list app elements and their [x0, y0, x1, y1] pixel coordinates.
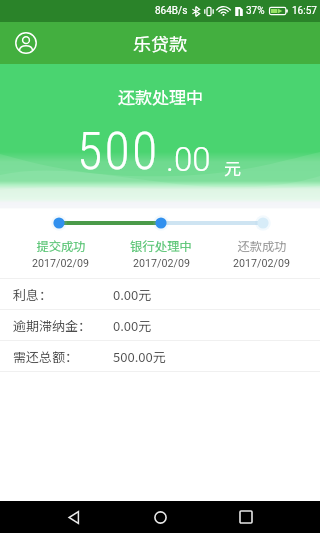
- staticText: 元: [224, 155, 241, 180]
- staticText: 还款处理中: [118, 84, 203, 109]
- button[interactable]: 利息：: [0, 279, 320, 309]
- staticText: 逾期滞纳金：: [13, 316, 92, 335]
- button[interactable]: Back: [46, 501, 102, 533]
- button[interactable]: 银行处理中: [121, 237, 201, 268]
- staticText: 乐贷款: [133, 30, 187, 56]
- staticText: 500: [77, 121, 160, 182]
- staticText: 还款成功: [237, 237, 287, 255]
- staticText: 需还总额：: [13, 347, 79, 366]
- staticText: 利息：: [13, 285, 53, 304]
- button[interactable]: Recent apps: [218, 501, 274, 533]
- staticText: 0.00元: [113, 316, 152, 335]
- staticText: 银行处理中: [130, 237, 192, 255]
- staticText: 2017/02/09: [133, 257, 190, 270]
- staticText: 37%: [246, 5, 265, 17]
- staticText: 0.00元: [113, 285, 152, 304]
- button[interactable]: Home: [132, 501, 188, 533]
- button[interactable]: 逾期滞纳金：: [0, 310, 320, 340]
- button[interactable]: 需还总额：: [0, 341, 320, 371]
- staticText: 2017/02/09: [233, 257, 290, 270]
- button[interactable]: Account: [11, 28, 41, 58]
- staticText: .00: [166, 140, 211, 179]
- button[interactable]: 还款成功: [221, 237, 301, 268]
- staticText: 16:57: [292, 5, 317, 17]
- staticText: 2017/02/09: [32, 257, 89, 270]
- staticText: 500.00元: [113, 347, 166, 366]
- staticText: 提交成功: [36, 237, 86, 255]
- button[interactable]: 提交成功: [20, 237, 100, 268]
- staticText: 864B/s: [155, 5, 188, 17]
